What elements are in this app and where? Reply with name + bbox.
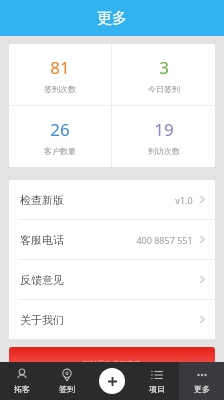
button[interactable]: 签到 [44,362,89,400]
button[interactable]: 关于我们 [9,300,215,339]
button[interactable]: 限时活动 立即查看 [9,347,215,369]
staticText: 客户数量 [44,146,76,156]
button[interactable]: 拓客 [0,362,44,400]
staticText: 更多 [97,9,127,28]
staticText: 关于我们 [20,313,64,327]
staticText: 81 [50,56,70,79]
staticText: 检查新版 [20,193,64,207]
staticText: 拓客 [14,384,30,394]
button[interactable]: 26 [9,106,111,167]
button[interactable]: 客服电话 [9,220,215,259]
staticText: 更多 [194,384,210,394]
staticText: 到访次数 [148,146,180,156]
staticText: 26 [50,118,70,141]
button[interactable]: 检查新版 [9,180,215,219]
staticText: 400 8857 551 [136,234,193,246]
staticText: 反馈意见 [20,273,64,287]
staticText: 19 [154,118,174,141]
button[interactable]: 项目 [134,362,179,400]
staticText: 限时活动 立即查看 [83,359,141,369]
staticText: 客服电话 [20,233,64,247]
staticText: 签到 [59,384,75,394]
staticText: 今日签到 [148,84,180,94]
button[interactable]: 反馈意见 [9,260,215,299]
button[interactable]: 3 [112,44,215,105]
button[interactable]: Add [99,368,125,394]
staticText: 项目 [149,384,165,394]
button[interactable]: 81 [9,44,111,105]
button[interactable]: 19 [112,106,215,167]
button[interactable]: 更多 [179,362,224,400]
staticText: 3 [159,56,169,79]
staticText: v1.0 [175,194,193,206]
staticText: 签到次数 [44,84,76,94]
